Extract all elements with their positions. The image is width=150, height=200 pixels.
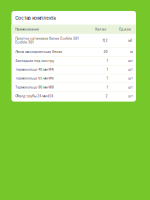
staticText: шт [128, 85, 132, 89]
staticText: шт [128, 59, 132, 63]
staticText: м2 [128, 39, 132, 42]
staticText: Кол-во [95, 27, 106, 31]
staticText: 20 [104, 50, 108, 54]
staticText: 11,2 [103, 39, 108, 42]
staticText: 2 [106, 94, 108, 98]
staticText: м [130, 50, 132, 54]
staticText: Лента маскировочная белая [15, 50, 62, 54]
staticText: 1 [107, 59, 108, 63]
staticText: Состав комплекта [15, 16, 55, 21]
staticText: 1 [107, 76, 108, 80]
staticText: Ед.изм [119, 27, 130, 31]
staticText: 1 [107, 85, 108, 89]
staticText: Полотно сатиновое белое Ecofole 501 Ecof… [15, 37, 78, 44]
staticText: Наименование [15, 27, 39, 31]
staticText: шт [128, 76, 132, 80]
staticText: Обвод трубы 24 мм d24 [15, 94, 53, 98]
staticText: шт [128, 94, 132, 98]
staticText: Термокольцо 90 мм (#9) [15, 85, 54, 89]
staticText: Закладная под люстру [15, 59, 54, 63]
staticText: Термокольцо 40 мм (#4) [15, 68, 54, 71]
staticText: шт [128, 68, 132, 71]
staticText: Термокольцо 65 мм (#6) [15, 76, 54, 80]
staticText: 1 [107, 68, 108, 71]
